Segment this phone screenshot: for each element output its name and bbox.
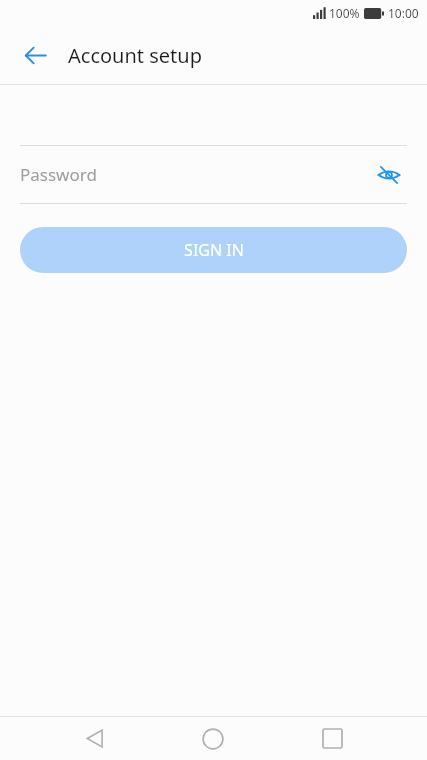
button[interactable]: Back <box>12 32 58 78</box>
staticText: SIGN IN <box>184 239 244 261</box>
staticText: Account setup <box>68 42 202 69</box>
button[interactable]: Home <box>189 717 237 760</box>
staticText: 10:00 <box>388 5 419 21</box>
button[interactable]: Recent apps <box>308 717 356 760</box>
button[interactable]: Back <box>70 717 118 760</box>
staticText: Password <box>20 163 97 186</box>
button[interactable]: Show password <box>371 157 407 193</box>
button[interactable]: Password <box>0 146 427 203</box>
button[interactable]: SIGN IN <box>20 227 407 273</box>
staticText: 100% <box>329 5 360 21</box>
